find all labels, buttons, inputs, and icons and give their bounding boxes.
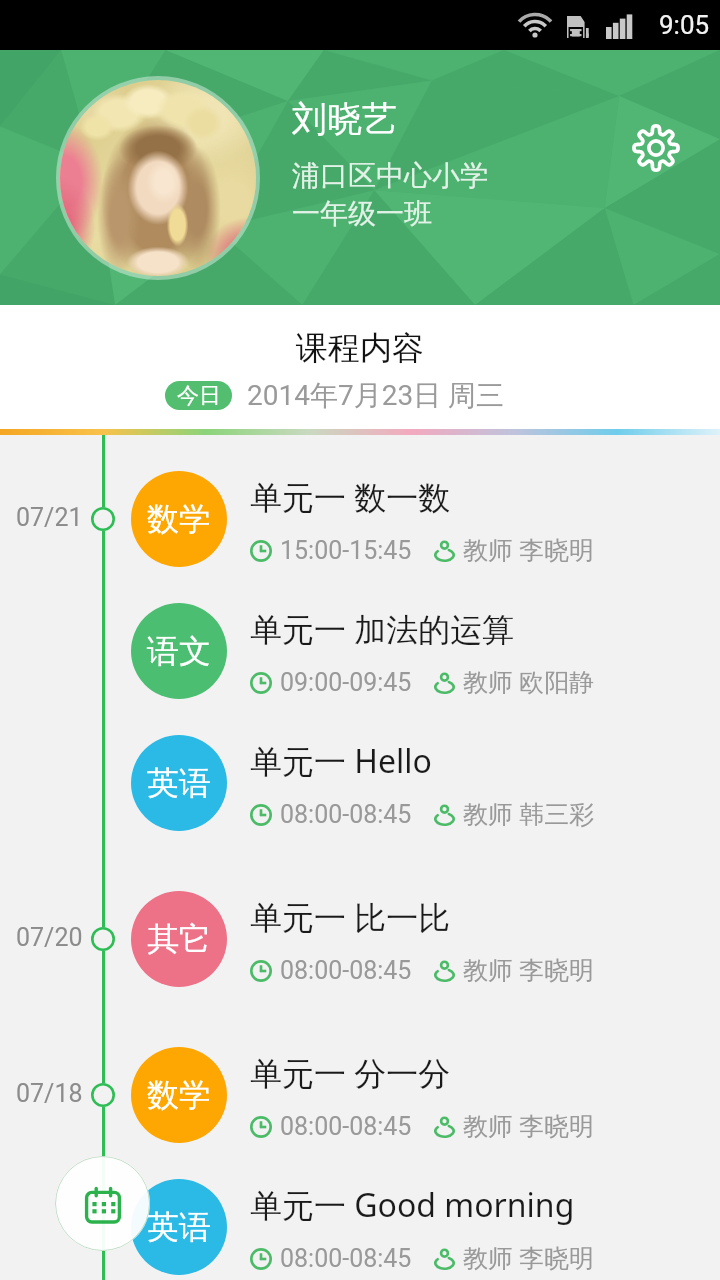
button[interactable]: 07/18 <box>0 1029 720 1161</box>
staticText: 教师 李晓明 <box>463 535 595 566</box>
button[interactable]: 今日 <box>165 381 232 410</box>
staticText: 教师 韩三彩 <box>463 799 595 830</box>
staticText: 数学 <box>147 1075 211 1115</box>
staticText: 单元一 Hello <box>250 739 432 783</box>
staticText: 教师 李晓明 <box>463 1111 595 1142</box>
staticText: 英语 <box>147 763 211 803</box>
staticText: 英语 <box>147 1207 211 1247</box>
staticText: 08:00-08:45 <box>280 956 412 985</box>
button[interactable]: 英语 <box>0 1161 720 1280</box>
staticText: 单元一 比一比 <box>250 895 451 939</box>
button[interactable]: Settings <box>626 118 686 178</box>
button[interactable]: Calendar <box>55 1156 150 1251</box>
staticText: 语文 <box>147 631 211 671</box>
button[interactable]: 07/21 <box>0 453 720 585</box>
staticText: 教师 李晓明 <box>463 1243 595 1274</box>
staticText: 单元一 数一数 <box>250 475 451 519</box>
staticText: 08:00-08:45 <box>280 800 412 829</box>
staticText: 08:00-08:45 <box>280 1244 412 1273</box>
staticText: 其它 <box>147 919 211 959</box>
staticText: 单元一 分一分 <box>250 1051 451 1095</box>
staticText: 单元一 Good morning <box>250 1183 575 1227</box>
staticText: 教师 李晓明 <box>463 955 595 986</box>
staticText: 07/20 <box>16 923 83 952</box>
staticText: 浦口区中心小学 <box>292 158 488 193</box>
staticText: 单元一 加法的运算 <box>250 607 515 651</box>
staticText: 2014年7月23日 周三 <box>247 378 505 413</box>
staticText: 教师 欧阳静 <box>463 667 595 698</box>
staticText: 15:00-15:45 <box>280 536 412 565</box>
staticText: 今日 <box>177 382 221 410</box>
staticText: 刘晓艺 <box>292 97 397 141</box>
staticText: 07/18 <box>16 1079 83 1108</box>
staticText: 数学 <box>147 499 211 539</box>
staticText: 09:00-09:45 <box>280 668 412 697</box>
staticText: 课程内容 <box>296 328 424 368</box>
staticText: 9:05 <box>659 10 710 40</box>
button[interactable]: 07/20 <box>0 873 720 1005</box>
staticText: 一年级一班 <box>292 196 432 231</box>
button[interactable]: 语文 <box>0 585 720 717</box>
staticText: 07/21 <box>16 503 83 532</box>
button[interactable]: 英语 <box>0 717 720 849</box>
staticText: 08:00-08:45 <box>280 1112 412 1141</box>
